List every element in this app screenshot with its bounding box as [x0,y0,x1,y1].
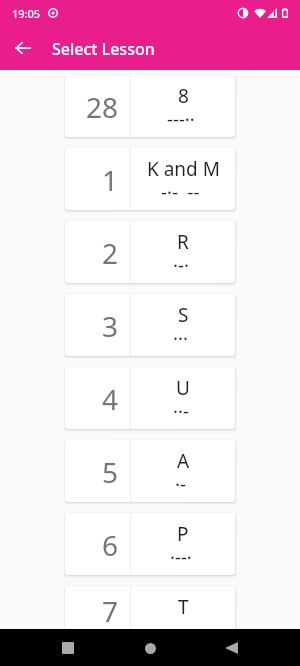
staticText: 3 [102,307,119,345]
staticText: - [178,617,189,634]
staticText: 8 [178,83,189,109]
staticText: 4 [102,380,119,418]
staticText: ---·· [167,106,200,131]
button[interactable]: 1 [65,148,235,210]
staticText: T [178,594,189,620]
button[interactable]: Recents [50,630,86,666]
staticText: ·-· [173,252,194,277]
staticText: Select Lesson [52,38,155,60]
staticText: 19:05 [12,6,41,21]
button[interactable]: 7 [65,586,235,634]
staticText: S [178,302,189,328]
staticText: ··- [173,398,194,423]
button[interactable]: Back [8,34,36,62]
button[interactable]: 2 [65,221,235,283]
button[interactable]: Back [213,630,249,666]
staticText: U [176,375,190,401]
staticText: 28 [86,88,119,126]
button[interactable]: 28 [65,75,235,137]
staticText: 5 [102,453,119,491]
staticText: K and M [147,156,220,182]
button[interactable]: 5 [65,440,235,502]
button[interactable]: Home [132,630,168,666]
button[interactable]: 4 [65,367,235,429]
staticText: 1 [102,161,119,199]
staticText: -·- -- [161,179,205,204]
staticText: ··· [173,325,193,350]
staticText: P [177,521,189,547]
staticText: 2 [102,234,119,272]
staticText: ·- [175,471,191,496]
staticText: A [177,448,190,474]
staticText: 7 [102,592,119,630]
staticText: ·--· [170,544,197,569]
staticText: 6 [102,526,119,564]
button[interactable]: 3 [65,294,235,356]
staticText: R [177,229,189,255]
button[interactable]: 6 [65,513,235,575]
